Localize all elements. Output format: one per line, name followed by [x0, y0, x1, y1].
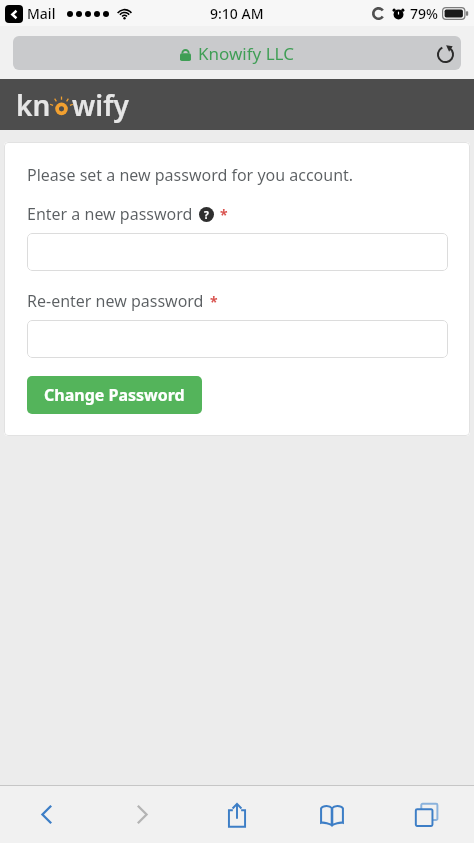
button[interactable]: Back — [0, 786, 94, 843]
staticText: kn — [16, 86, 51, 124]
button[interactable]: Reload — [429, 37, 461, 69]
staticText: wify — [72, 86, 129, 124]
button[interactable]: Change Password — [27, 376, 202, 414]
staticText: Enter a new password — [27, 203, 193, 225]
staticText: * — [220, 205, 228, 224]
button[interactable]: Password requirements help — [199, 207, 214, 222]
button[interactable]: Share — [189, 786, 284, 843]
staticText: Mail — [27, 4, 56, 23]
staticText: 79% — [410, 4, 438, 23]
button[interactable]: Address bar — [13, 36, 461, 70]
staticText: Change Password — [44, 384, 185, 406]
button[interactable]: Password field — [27, 320, 448, 358]
staticText: ? — [204, 208, 209, 222]
staticText: Re-enter new password — [27, 290, 204, 312]
staticText: 9:10 AM — [210, 4, 264, 23]
button[interactable]: Forward — [94, 786, 189, 843]
button[interactable]: Tabs — [379, 786, 474, 843]
staticText: Knowify LLC — [198, 42, 294, 65]
staticText: Please set a new password for you accoun… — [27, 164, 354, 186]
button[interactable]: Bookmarks — [284, 786, 379, 843]
button[interactable]: Password field — [27, 233, 448, 271]
staticText: * — [210, 292, 218, 311]
